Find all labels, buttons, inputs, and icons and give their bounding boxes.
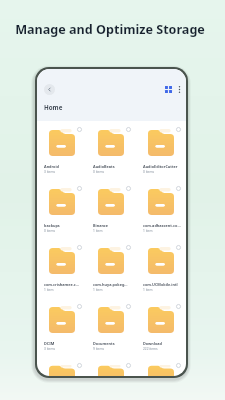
button[interactable]: backups [37, 180, 86, 239]
button[interactable]: Android [37, 121, 86, 180]
staticText: com.UCMobile.intl [143, 282, 178, 287]
button[interactable]: More options [174, 84, 185, 95]
staticText: Android [44, 164, 60, 169]
staticText: 3 items [44, 170, 55, 174]
button[interactable]: DCIM [37, 298, 86, 357]
staticText: AudioEditorCutter [143, 164, 178, 169]
button[interactable]: Pictures [136, 357, 186, 376]
staticText: DCIM [44, 341, 55, 346]
staticText: Manage and Optimize Storage [15, 21, 205, 38]
button[interactable]: com.UCMobile.intl [136, 239, 186, 298]
staticText: 1 item [143, 288, 153, 292]
staticText: com.adhaxcent.co… [143, 223, 181, 228]
button[interactable]: Download [136, 298, 186, 357]
staticText: 1 item [93, 288, 103, 292]
staticText: 0 items [44, 229, 55, 233]
button[interactable]: Music [86, 357, 136, 376]
button[interactable]: AudioBeats [86, 121, 136, 180]
button[interactable]: Binance [86, 180, 136, 239]
button[interactable]: com.huya.pokeg… [86, 239, 136, 298]
button[interactable]: Back [44, 84, 55, 95]
staticText: Download [143, 341, 162, 346]
staticText: 1 item [93, 229, 103, 233]
staticText: com.huya.pokeg… [93, 282, 128, 287]
staticText: AudioBeats [93, 164, 115, 169]
button[interactable]: Grid view [162, 83, 174, 95]
staticText: 1 item [44, 288, 54, 292]
staticText: 3 items [44, 347, 55, 351]
staticText: 222 items [143, 347, 158, 351]
staticText: Documents [93, 341, 115, 346]
staticText: 9 items [93, 347, 104, 351]
button[interactable]: com.crishamee.c… [37, 239, 86, 298]
button[interactable]: Documents [86, 298, 136, 357]
staticText: 1 item [143, 229, 153, 233]
staticText: 0 items [143, 170, 154, 174]
button[interactable]: Movies [37, 357, 86, 376]
button[interactable]: com.adhaxcent.co… [136, 180, 186, 239]
staticText: Home [44, 103, 63, 111]
staticText: com.crishamee.c… [44, 282, 80, 287]
staticText: Binance [93, 223, 109, 228]
staticText: backups [44, 223, 60, 228]
staticText: 0 items [93, 170, 104, 174]
button[interactable]: AudioEditorCutter [136, 121, 186, 180]
